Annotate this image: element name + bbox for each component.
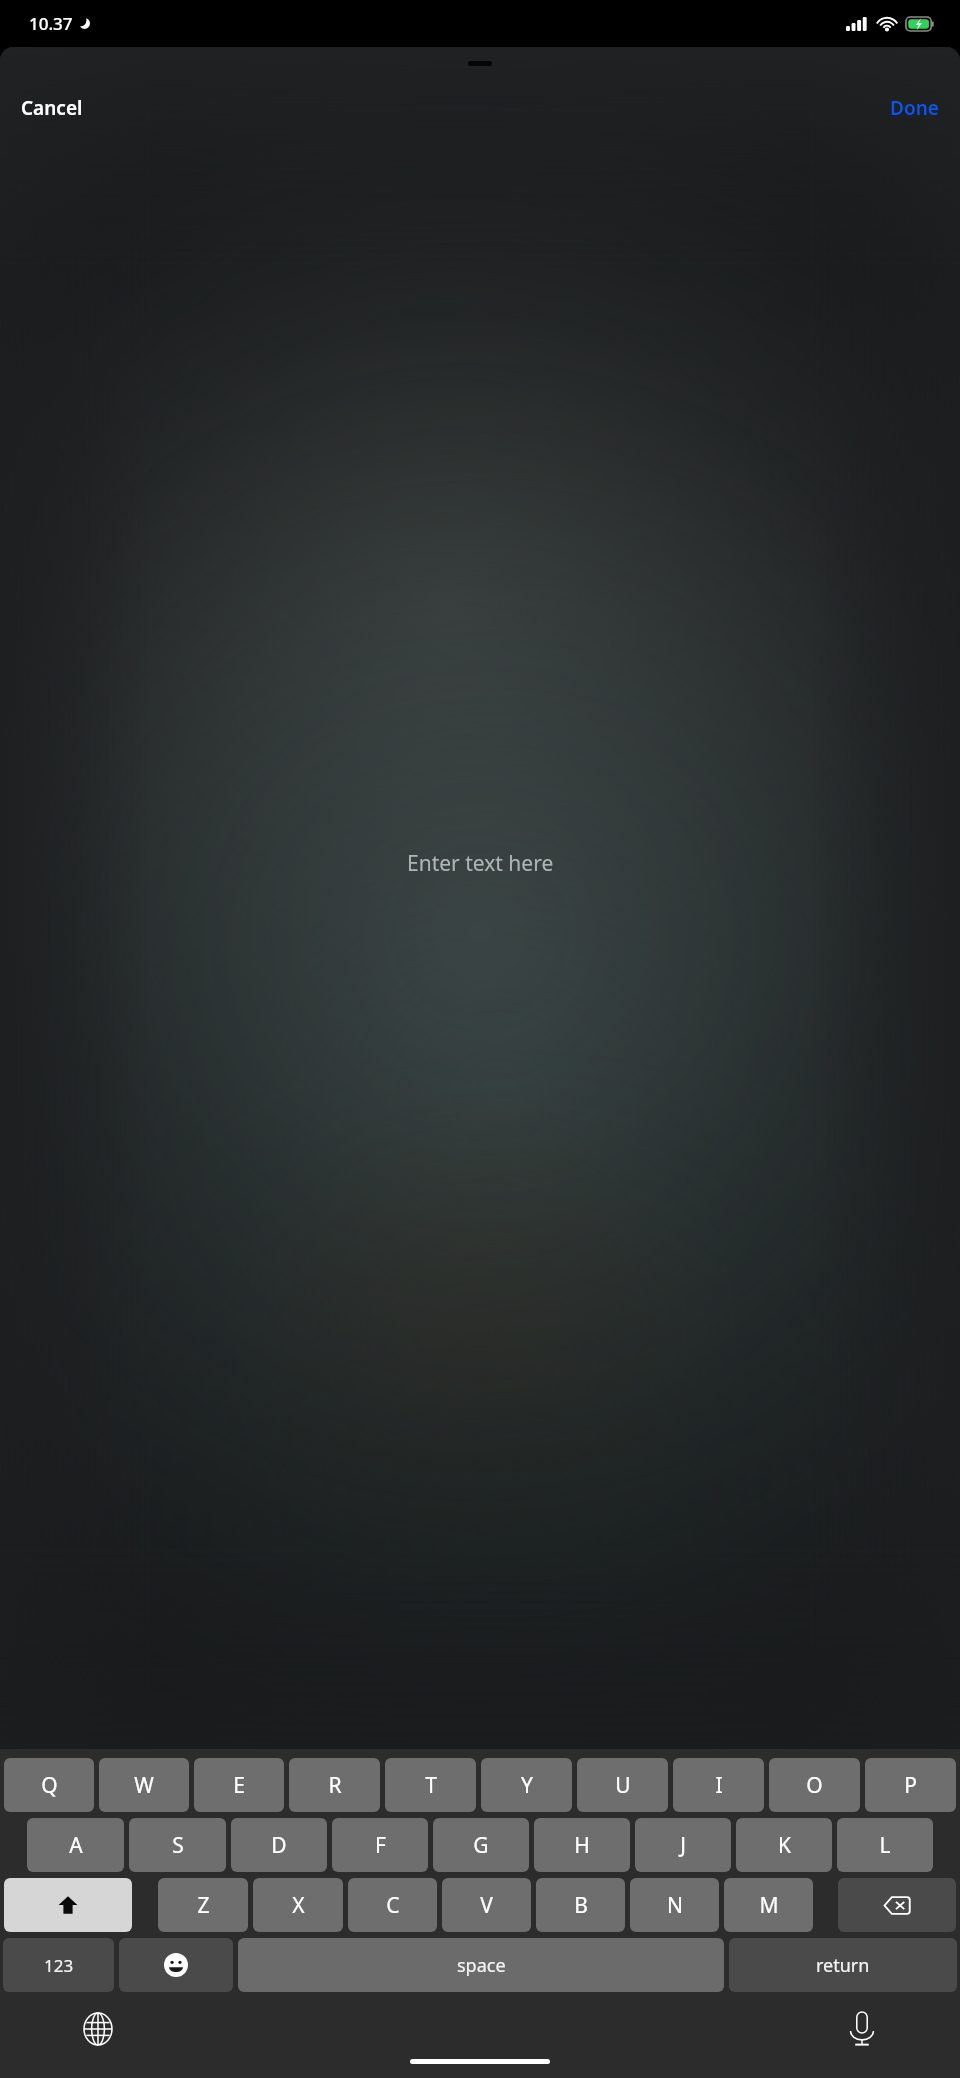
staticText: Enter text here	[407, 849, 554, 878]
staticText: Q	[41, 1771, 58, 1800]
staticText: 10.37	[29, 12, 73, 35]
button[interactable]: Z	[158, 1878, 248, 1932]
button[interactable]: K	[736, 1818, 832, 1872]
button[interactable]: Emoji	[119, 1938, 233, 1992]
button[interactable]: V	[442, 1878, 531, 1932]
staticText: 123	[44, 1954, 74, 1977]
staticText: Z	[197, 1891, 210, 1920]
button[interactable]: R	[289, 1758, 380, 1812]
button[interactable]: F	[332, 1818, 428, 1872]
staticText: Y	[521, 1771, 533, 1800]
button[interactable]: Backspace	[838, 1878, 956, 1932]
button[interactable]: S	[129, 1818, 226, 1872]
button[interactable]: T	[385, 1758, 476, 1812]
button[interactable]: Shift	[4, 1878, 132, 1932]
button[interactable]: U	[577, 1758, 668, 1812]
button[interactable]: H	[534, 1818, 630, 1872]
staticText: O	[806, 1771, 823, 1800]
button[interactable]: B	[536, 1878, 625, 1932]
button[interactable]: O	[769, 1758, 860, 1812]
staticText: P	[904, 1771, 917, 1800]
button[interactable]: W	[99, 1758, 189, 1812]
staticText: K	[778, 1831, 791, 1860]
staticText: H	[574, 1831, 590, 1860]
button[interactable]: L	[837, 1818, 933, 1872]
staticText: Cancel	[21, 95, 83, 121]
staticText: G	[473, 1831, 489, 1860]
staticText: X	[292, 1891, 305, 1920]
button[interactable]: X	[253, 1878, 343, 1932]
button[interactable]: D	[231, 1818, 327, 1872]
staticText: N	[667, 1891, 683, 1920]
staticText: T	[425, 1771, 437, 1800]
staticText: F	[375, 1831, 386, 1860]
button[interactable]: A	[27, 1818, 124, 1872]
button[interactable]: P	[865, 1758, 956, 1812]
button[interactable]: return	[729, 1938, 957, 1992]
staticText: A	[69, 1831, 83, 1860]
button[interactable]: Cancel	[8, 87, 96, 129]
staticText: B	[574, 1891, 588, 1920]
staticText: Done	[890, 95, 939, 121]
staticText: R	[328, 1771, 342, 1800]
button[interactable]: Y	[481, 1758, 572, 1812]
button[interactable]: space	[238, 1938, 724, 1992]
staticText: U	[615, 1771, 631, 1800]
button[interactable]: Q	[4, 1758, 94, 1812]
staticText: M	[759, 1891, 779, 1920]
button[interactable]: N	[630, 1878, 719, 1932]
button[interactable]: Done	[877, 87, 952, 129]
staticText: L	[879, 1831, 891, 1860]
button[interactable]: G	[433, 1818, 529, 1872]
button[interactable]: M	[724, 1878, 813, 1932]
staticText: S	[172, 1831, 184, 1860]
button[interactable]: C	[348, 1878, 437, 1932]
staticText: J	[680, 1831, 686, 1860]
button[interactable]: E	[194, 1758, 284, 1812]
staticText: I	[715, 1771, 723, 1800]
staticText: space	[457, 1953, 506, 1978]
button[interactable]: 123	[3, 1938, 114, 1992]
staticText: return	[816, 1953, 870, 1978]
button[interactable]: J	[635, 1818, 731, 1872]
button[interactable]: I	[673, 1758, 764, 1812]
staticText: E	[233, 1771, 245, 1800]
staticText: W	[134, 1771, 154, 1800]
staticText: D	[271, 1831, 287, 1860]
button[interactable]: Voice input	[842, 2009, 882, 2049]
button[interactable]: Change keyboard language	[78, 2009, 118, 2049]
staticText: V	[480, 1891, 493, 1920]
staticText: C	[386, 1891, 400, 1920]
